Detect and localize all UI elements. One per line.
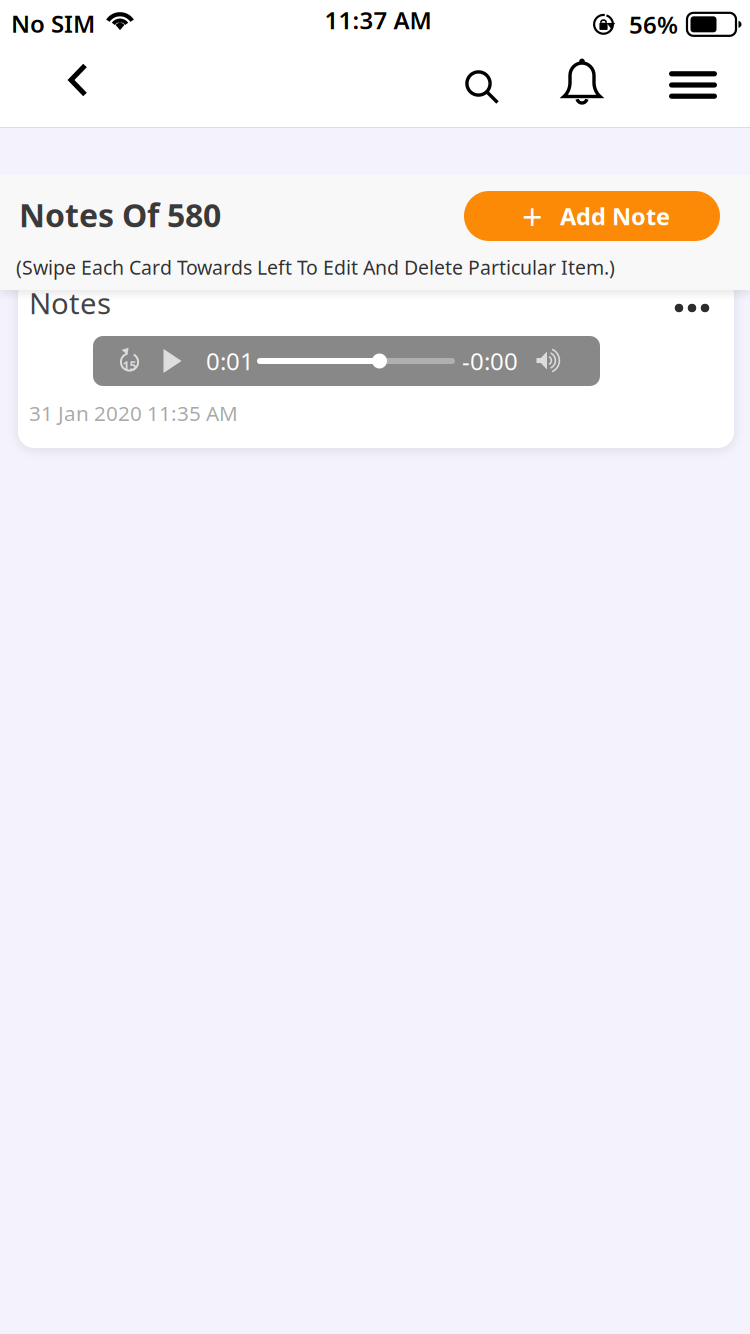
staticText: 15 <box>122 357 136 374</box>
staticText: 56% <box>629 8 678 41</box>
staticText: Add Note <box>560 200 670 232</box>
staticText: No SIM <box>11 7 95 40</box>
staticText: Notes Of 580 <box>19 193 221 237</box>
button[interactable]: + <box>464 191 720 241</box>
staticText: Notes <box>29 283 111 323</box>
button[interactable]: Skip back 15 seconds <box>107 336 151 386</box>
button[interactable]: Play <box>150 336 194 386</box>
staticText: 0:01 <box>206 345 254 377</box>
staticText: + <box>522 191 543 240</box>
button[interactable]: Search <box>451 56 513 118</box>
button[interactable]: Volume <box>531 336 575 386</box>
staticText: 11:37 AM <box>324 4 431 36</box>
button[interactable]: Back <box>47 49 109 111</box>
staticText: 31 Jan 2020 11:35 AM <box>29 399 238 427</box>
button[interactable]: Notifications <box>551 51 613 113</box>
staticText: -0:00 <box>462 345 518 377</box>
button[interactable]: More options <box>657 289 727 327</box>
button[interactable]: Menu <box>662 54 724 116</box>
staticText: (Swipe Each Card Towards Left To Edit An… <box>16 254 615 280</box>
